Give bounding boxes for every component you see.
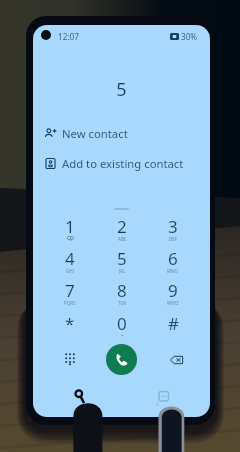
staticText: 12:07 bbox=[58, 31, 79, 42]
button[interactable]: 0 bbox=[99, 312, 145, 342]
staticText: ABC bbox=[118, 236, 127, 242]
staticText: JKL bbox=[119, 268, 126, 274]
button[interactable]: * bbox=[47, 312, 93, 342]
staticText: 8 bbox=[117, 279, 127, 302]
staticText: PQRS bbox=[64, 300, 76, 306]
staticText: 30% bbox=[181, 31, 198, 42]
staticText: WXYZ bbox=[167, 300, 179, 306]
button[interactable]: 2 bbox=[99, 215, 145, 245]
button[interactable]: # bbox=[150, 312, 196, 342]
staticText: 6 bbox=[168, 247, 178, 270]
staticText: + bbox=[121, 333, 124, 339]
button[interactable]: New contact bbox=[33, 121, 210, 145]
staticText: 4 bbox=[65, 247, 75, 270]
staticText: TUV bbox=[118, 300, 127, 306]
button[interactable]: Add to existing contact bbox=[33, 151, 210, 175]
button[interactable]: 3 bbox=[150, 215, 196, 245]
staticText: 0 bbox=[117, 312, 127, 335]
staticText: GHI bbox=[66, 268, 75, 274]
button[interactable]: 8 bbox=[99, 279, 145, 309]
staticText: 5 bbox=[117, 247, 127, 270]
button[interactable]: 7 bbox=[47, 279, 93, 309]
staticText: 3 bbox=[168, 215, 178, 238]
button[interactable]: 5 bbox=[99, 247, 145, 277]
staticText: New contact bbox=[62, 126, 128, 141]
button[interactable]: 1 bbox=[47, 215, 93, 245]
staticText: 5 bbox=[33, 77, 210, 102]
button[interactable]: Dialpad bbox=[56, 345, 84, 373]
staticText: 7 bbox=[65, 279, 75, 302]
button[interactable]: Call bbox=[106, 344, 137, 375]
button[interactable]: 9 bbox=[150, 279, 196, 309]
staticText: Add to existing contact bbox=[62, 156, 184, 171]
staticText: 9 bbox=[168, 279, 178, 302]
staticText: # bbox=[168, 312, 179, 335]
staticText: DEF bbox=[169, 236, 178, 242]
staticText: MNO bbox=[167, 268, 179, 274]
staticText: 1 bbox=[65, 215, 75, 238]
staticText: 2 bbox=[117, 215, 127, 238]
button[interactable]: 6 bbox=[150, 247, 196, 277]
staticText: * bbox=[65, 312, 75, 335]
button[interactable]: Backspace bbox=[162, 346, 190, 374]
button[interactable]: 4 bbox=[47, 247, 93, 277]
